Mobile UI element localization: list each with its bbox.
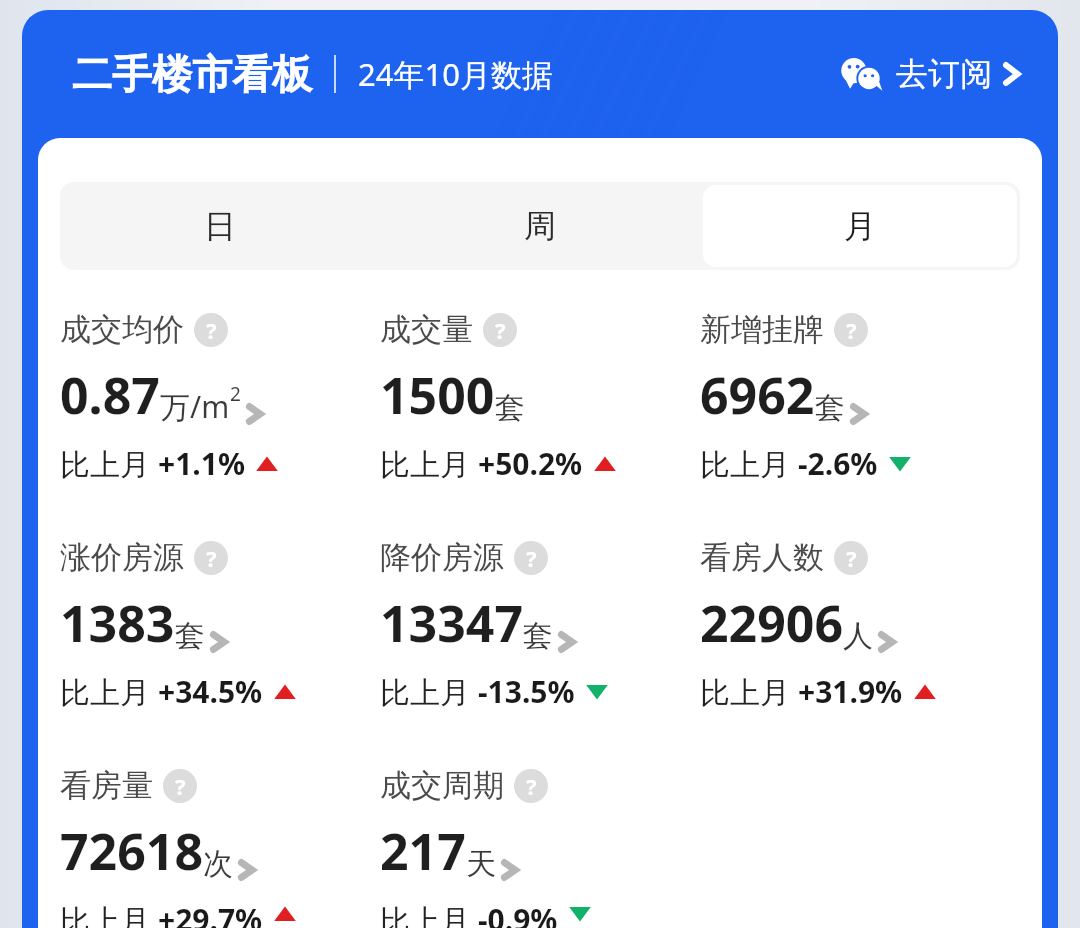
staticText: 新增挂牌: [700, 310, 824, 349]
staticText: 套: [815, 389, 845, 427]
staticText: 周: [524, 206, 556, 246]
staticText: 比上月: [700, 443, 798, 484]
button[interactable]: 成交量: [380, 310, 700, 484]
button[interactable]: 新增挂牌: [700, 310, 1020, 484]
button[interactable]: 降价房源: [380, 538, 700, 712]
staticText: 比上月: [380, 899, 478, 928]
staticText: 天: [466, 845, 496, 883]
staticText: +1.1%: [158, 443, 245, 484]
button[interactable]: 看房量: [60, 766, 380, 928]
staticText: 月: [844, 206, 876, 246]
button[interactable]: 成交均价: [60, 310, 380, 484]
staticText: 比上月: [60, 899, 158, 928]
staticText: 成交周期: [380, 766, 504, 805]
staticText: 22906: [700, 589, 843, 657]
staticText: -13.5%: [478, 671, 575, 712]
staticText: 看房量: [60, 766, 153, 805]
staticText: ?: [526, 771, 537, 801]
staticText: 二手楼市看板: [72, 49, 312, 99]
staticText: 比上月: [60, 671, 158, 712]
staticText: 2: [230, 381, 241, 407]
staticText: 套: [523, 617, 553, 655]
staticText: ?: [846, 543, 857, 573]
staticText: 0.87: [60, 361, 160, 429]
staticText: +50.2%: [478, 443, 583, 484]
staticText: 次: [203, 845, 233, 883]
staticText: ?: [175, 771, 186, 801]
staticText: 比上月: [700, 671, 798, 712]
staticText: 人: [843, 617, 873, 655]
staticText: 6962: [700, 361, 815, 429]
other: 微信: [840, 57, 882, 91]
staticText: 1500: [380, 361, 495, 429]
staticText: 1383: [60, 589, 175, 657]
staticText: 套: [175, 617, 205, 655]
staticText: ?: [846, 315, 857, 345]
staticText: ?: [495, 315, 506, 345]
button[interactable]: 微信: [834, 46, 1028, 102]
staticText: 13347: [380, 589, 523, 657]
staticText: +29.7%: [158, 899, 263, 928]
staticText: 套: [495, 389, 525, 427]
button[interactable]: 涨价房源: [60, 538, 380, 712]
staticText: 看房人数: [700, 538, 824, 577]
staticText: ?: [206, 315, 217, 345]
staticText: 比上月: [60, 443, 158, 484]
staticText: 比上月: [380, 443, 478, 484]
staticText: 成交量: [380, 310, 473, 349]
staticText: 降价房源: [380, 538, 504, 577]
staticText: +31.9%: [798, 671, 903, 712]
staticText: +34.5%: [158, 671, 263, 712]
staticText: -2.6%: [798, 443, 878, 484]
staticText: 万/m: [160, 386, 230, 427]
staticText: 成交均价: [60, 310, 184, 349]
button[interactable]: 成交周期: [380, 766, 700, 928]
staticText: 去订阅: [896, 54, 992, 94]
staticText: 24年10月数据: [358, 53, 553, 95]
staticText: 72618: [60, 817, 203, 885]
staticText: 日: [204, 206, 236, 246]
button[interactable]: 周: [383, 185, 697, 267]
staticText: -0.9%: [478, 899, 558, 928]
staticText: ?: [526, 543, 537, 573]
button[interactable]: 日: [63, 185, 377, 267]
button[interactable]: 看房人数: [700, 538, 1020, 712]
staticText: 比上月: [380, 671, 478, 712]
staticText: 217: [380, 817, 466, 885]
staticText: ?: [206, 543, 217, 573]
staticText: 涨价房源: [60, 538, 184, 577]
button[interactable]: 月: [703, 185, 1017, 267]
